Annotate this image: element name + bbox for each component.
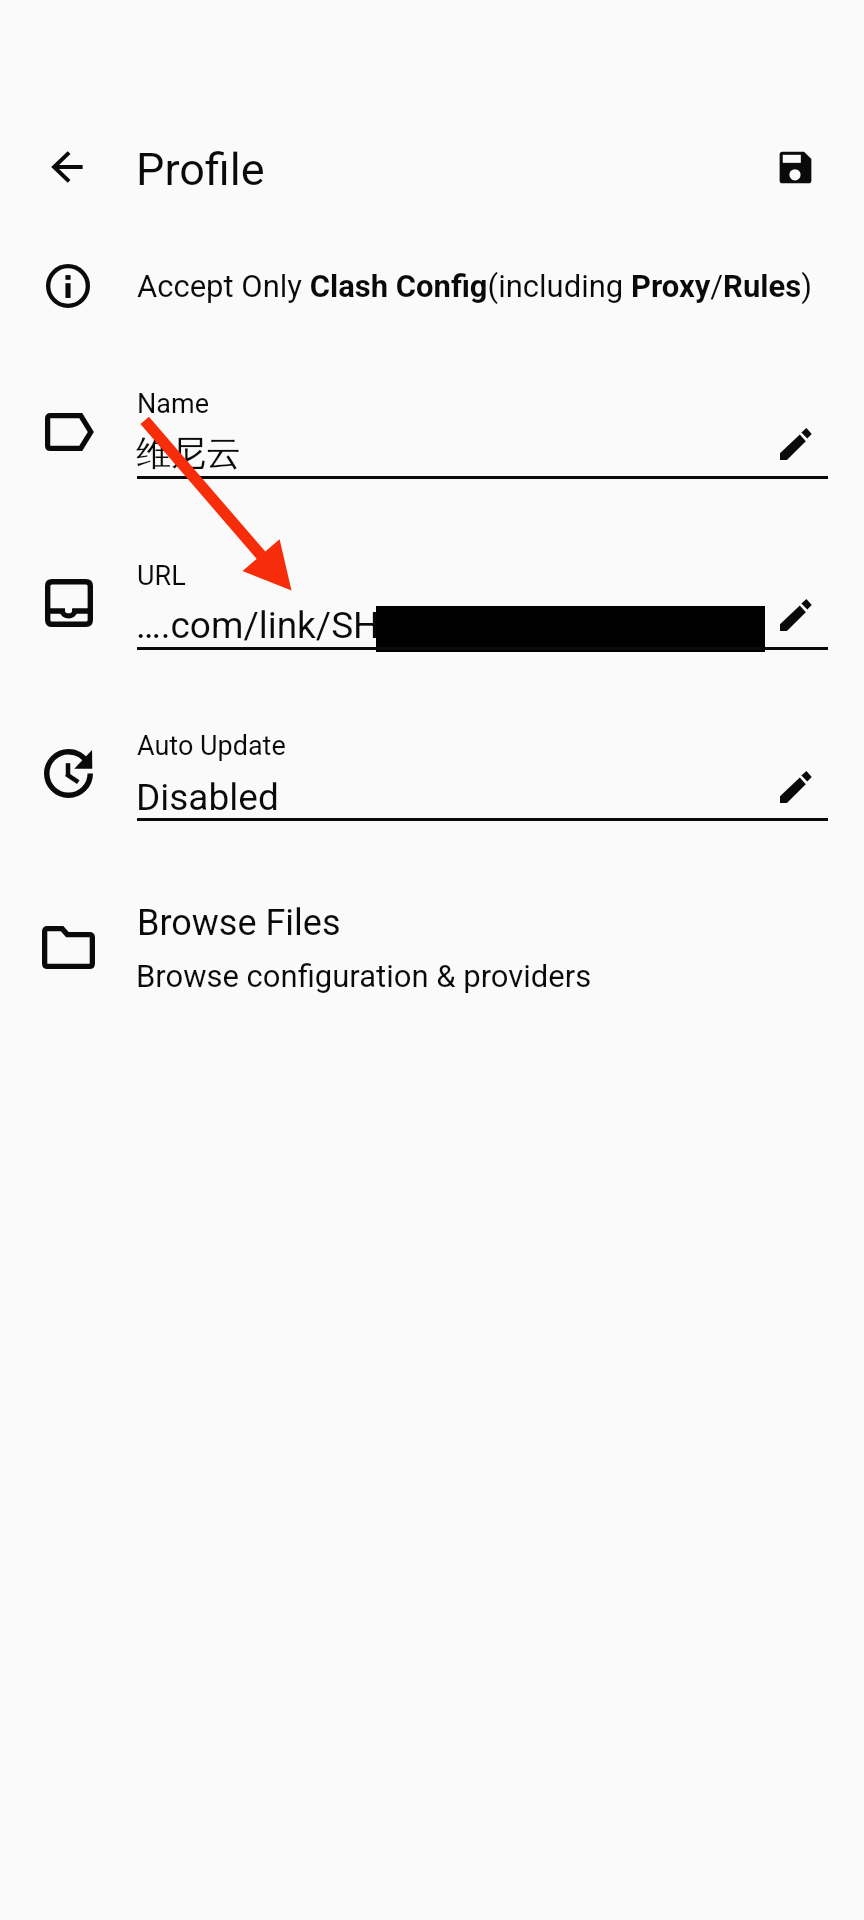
button[interactable]: Back — [44, 143, 92, 191]
button[interactable]: Edit — [772, 763, 820, 811]
staticText: Profile — [136, 143, 265, 196]
staticText: Browse configuration & providers — [136, 958, 592, 994]
staticText: URL — [137, 560, 186, 592]
staticText: Disabled — [136, 776, 279, 819]
staticText: ….com/link/SHA — [136, 604, 404, 647]
button[interactable]: Edit — [772, 591, 820, 639]
button[interactable]: Save — [772, 144, 819, 191]
staticText: Browse Files — [137, 902, 341, 944]
staticText: Accept Only Clash Config(including Proxy… — [137, 268, 812, 304]
staticText: Name — [137, 388, 209, 420]
staticText: Auto Update — [137, 730, 286, 762]
button[interactable]: Edit — [772, 420, 820, 468]
staticText: 维尼云 — [136, 431, 241, 475]
